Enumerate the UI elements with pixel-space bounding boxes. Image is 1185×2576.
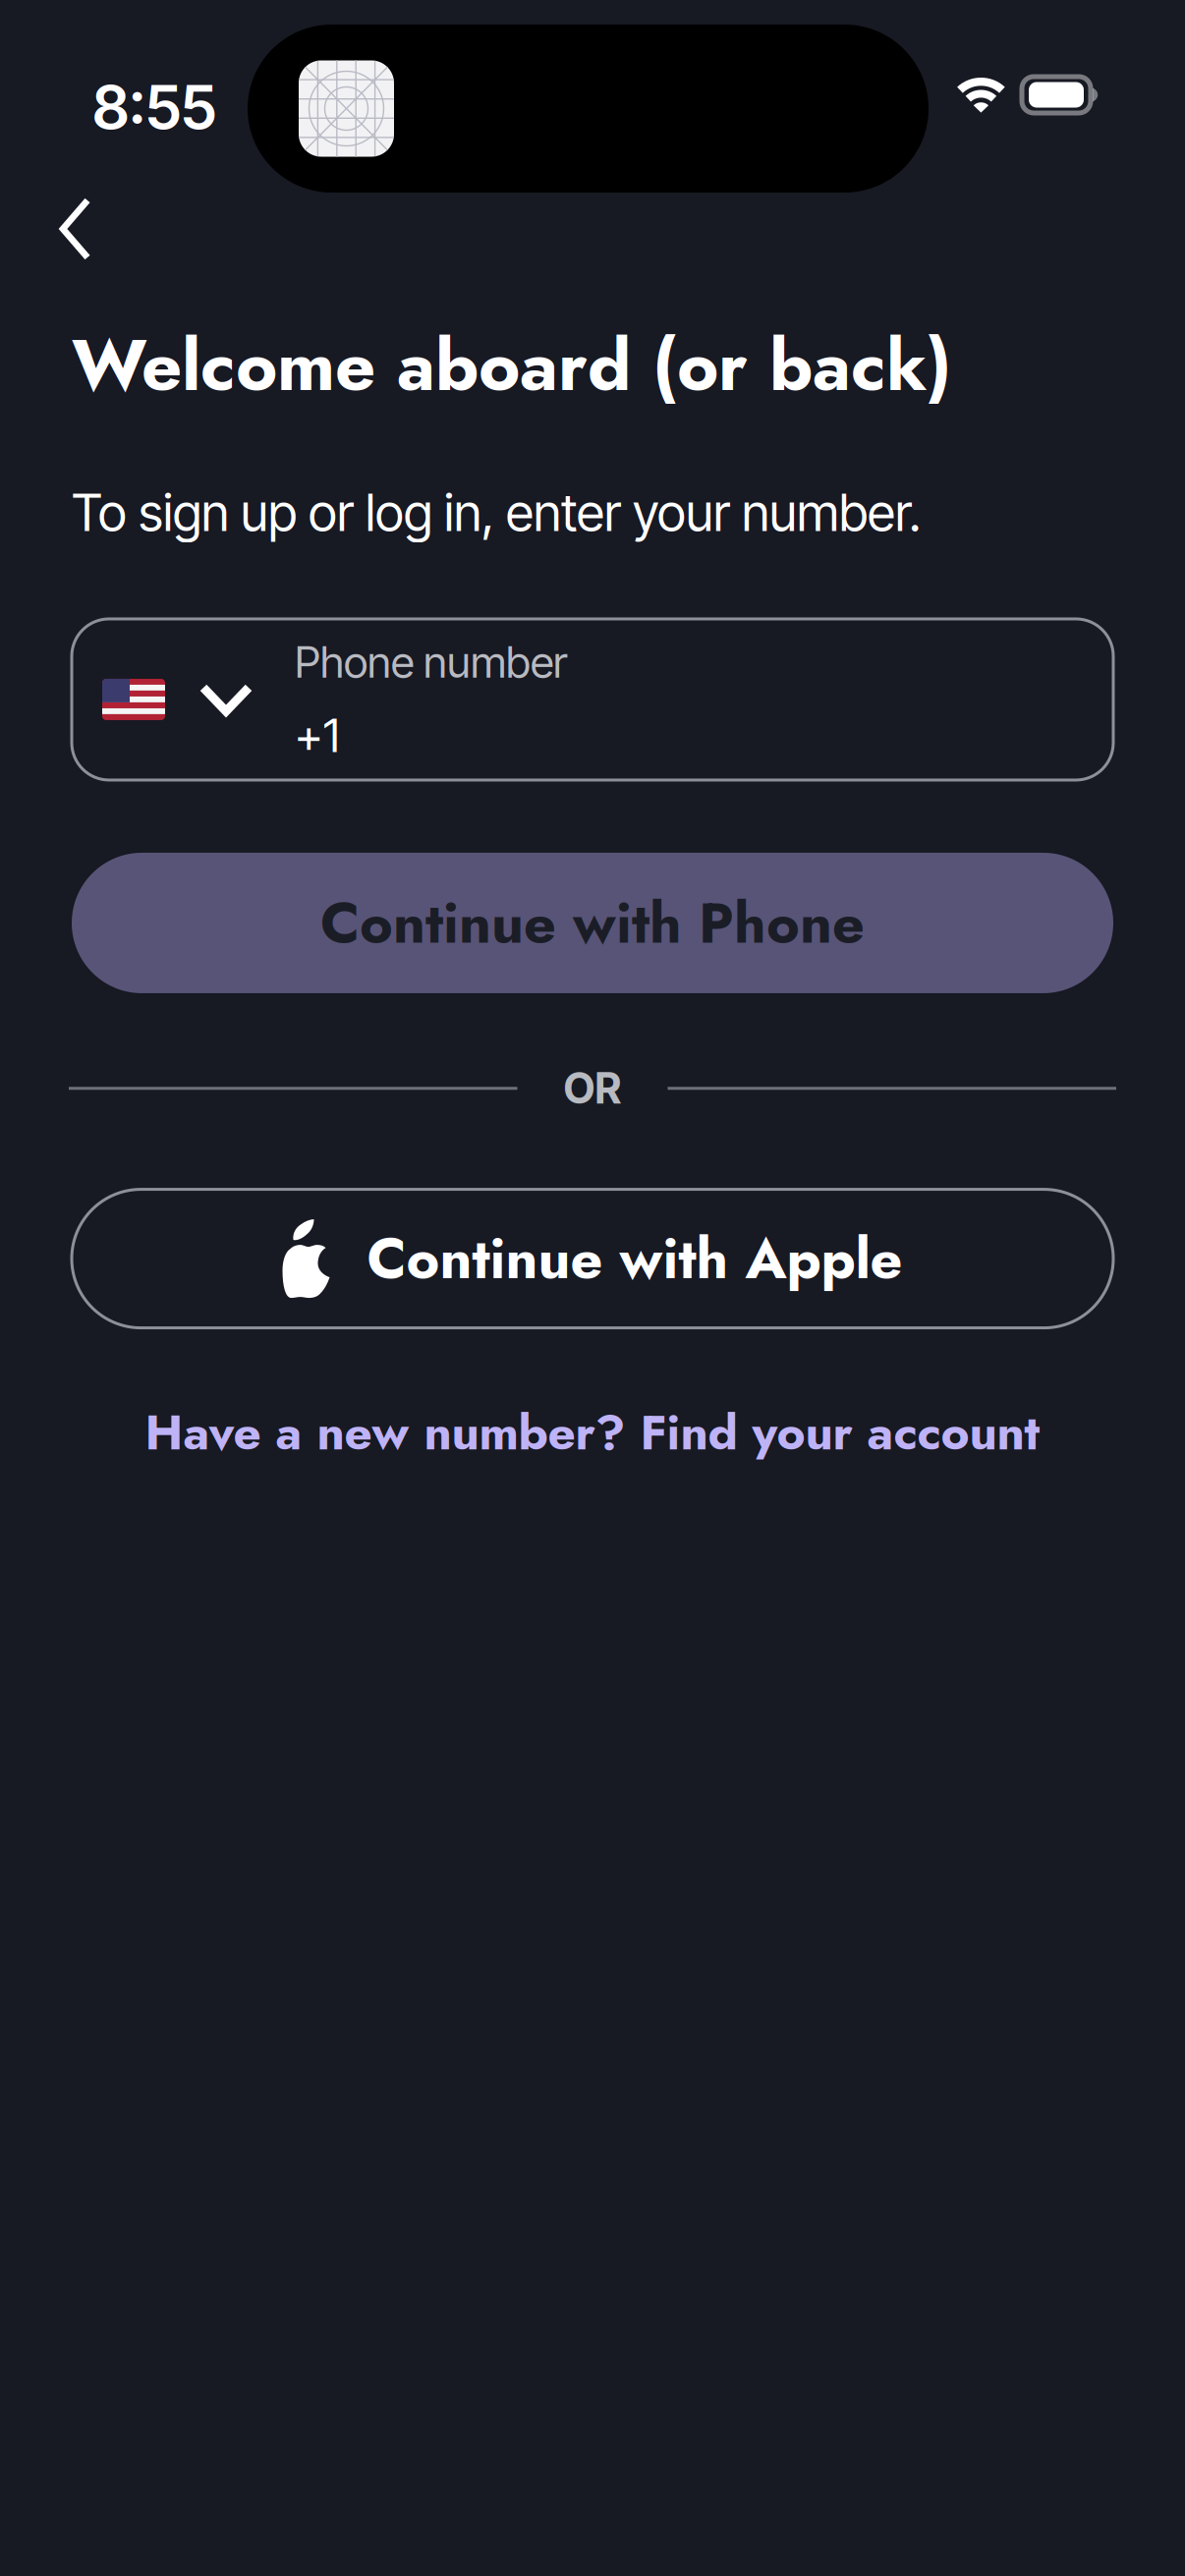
button[interactable]: Continue with Phone — [72, 853, 1113, 993]
staticText: Continue with Apple — [367, 1218, 903, 1299]
button[interactable]: Back — [43, 198, 130, 287]
button[interactable]: Continue with Apple — [72, 1189, 1113, 1328]
staticText: To sign up or log in, enter your number. — [72, 481, 921, 543]
staticText: Continue with Phone — [320, 882, 865, 964]
staticText: Welcome aboard (or back) — [72, 314, 952, 417]
staticText: Phone number — [295, 636, 567, 688]
staticText: OR — [564, 1063, 621, 1114]
staticText: +1 — [295, 708, 340, 763]
staticText: Have a new number? Find your account — [145, 1398, 1040, 1468]
button[interactable]: Phone number — [72, 619, 1113, 780]
button[interactable]: Have a new number? Find your account — [0, 1398, 1185, 1468]
staticText: 8:55 — [92, 71, 216, 144]
